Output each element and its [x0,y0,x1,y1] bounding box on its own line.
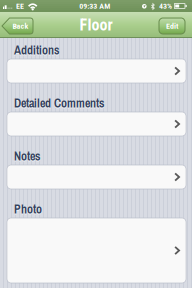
staticText: Photo [14,202,42,218]
button[interactable] [7,218,186,283]
staticText: Additions [14,43,59,59]
button[interactable] [7,112,186,136]
staticText: Notes [14,149,40,165]
staticText: Notes [14,148,40,164]
staticText: Back [12,21,28,31]
staticText: 09:33 AM [79,1,110,11]
staticText: Floor [79,16,112,34]
staticText: Detailed Comments [14,95,104,111]
staticText: 43% [159,1,172,11]
staticText: Edit [166,21,178,31]
button[interactable] [7,59,186,83]
staticText: Photo [14,201,42,217]
staticText: EE [16,1,24,11]
button[interactable] [7,165,186,189]
button[interactable]: Edit [159,18,185,34]
button[interactable]: Back [2,18,33,34]
staticText: Detailed Comments [14,96,104,112]
staticText: Additions [14,42,59,58]
